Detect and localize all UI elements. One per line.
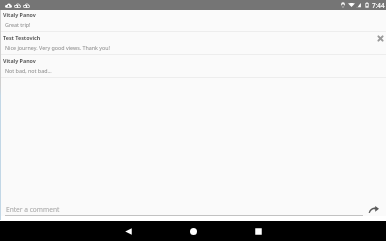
staticText: Enter a comment: [6, 205, 60, 214]
button[interactable]: Vitaly Panov: [0, 9, 386, 31]
staticText: Not bad, not bad...: [5, 67, 52, 74]
staticText: Vitaly Panov: [3, 57, 36, 64]
button[interactable]: Back: [96, 221, 161, 241]
staticText: Nice journey. Very good views. Thank you…: [5, 44, 111, 51]
staticText: Test Testovich: [3, 34, 41, 41]
button[interactable]: Send comment: [365, 202, 382, 216]
button[interactable]: Recent apps: [226, 221, 291, 241]
staticText: Vitaly Panov: [3, 11, 36, 18]
button[interactable]: Vitaly Panov: [0, 55, 386, 77]
button[interactable]: Delete comment: [377, 35, 384, 42]
staticText: Great trip!: [5, 21, 31, 28]
button[interactable]: Test Testovich: [0, 32, 386, 54]
staticText: 7:44: [372, 1, 385, 10]
button[interactable]: Home: [161, 221, 226, 241]
